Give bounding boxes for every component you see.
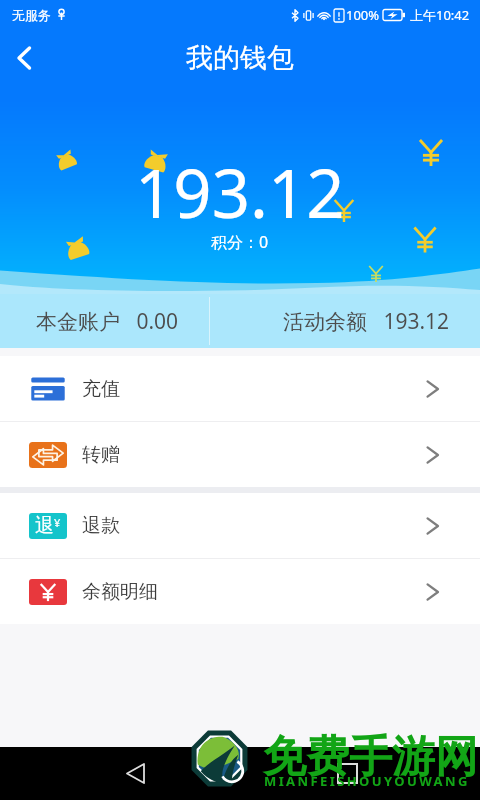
staticText: 上午10:42 xyxy=(410,6,470,24)
button[interactable]: 转赠 xyxy=(0,422,480,487)
button[interactable]: 余额明细 xyxy=(0,559,480,624)
staticText: 无服务 xyxy=(12,7,51,23)
button[interactable]: 充值 xyxy=(0,356,480,421)
staticText: 退 xyxy=(35,514,54,538)
staticText: 本金账户 0.00 xyxy=(36,307,179,336)
staticText: MIANFEISHOUYOUWANG xyxy=(264,772,470,790)
staticText: 我的钱包 xyxy=(186,41,294,75)
staticText: 193.12 xyxy=(135,146,345,237)
button[interactable]: Home xyxy=(326,752,368,794)
staticText: ¥ xyxy=(54,515,61,530)
staticText: 转赠 xyxy=(82,443,120,467)
button[interactable]: 退 xyxy=(0,493,480,558)
button[interactable]: Back xyxy=(114,752,156,794)
staticText: 充值 xyxy=(82,377,120,401)
staticText: 余额明细 xyxy=(82,580,158,604)
staticText: 免费手游网 xyxy=(263,730,478,784)
staticText: 退款 xyxy=(82,514,120,538)
staticText: 100% xyxy=(346,6,380,24)
button[interactable]: Back xyxy=(0,34,48,82)
staticText: 积分：0 xyxy=(211,231,269,253)
staticText: 活动余额 193.12 xyxy=(283,307,450,336)
